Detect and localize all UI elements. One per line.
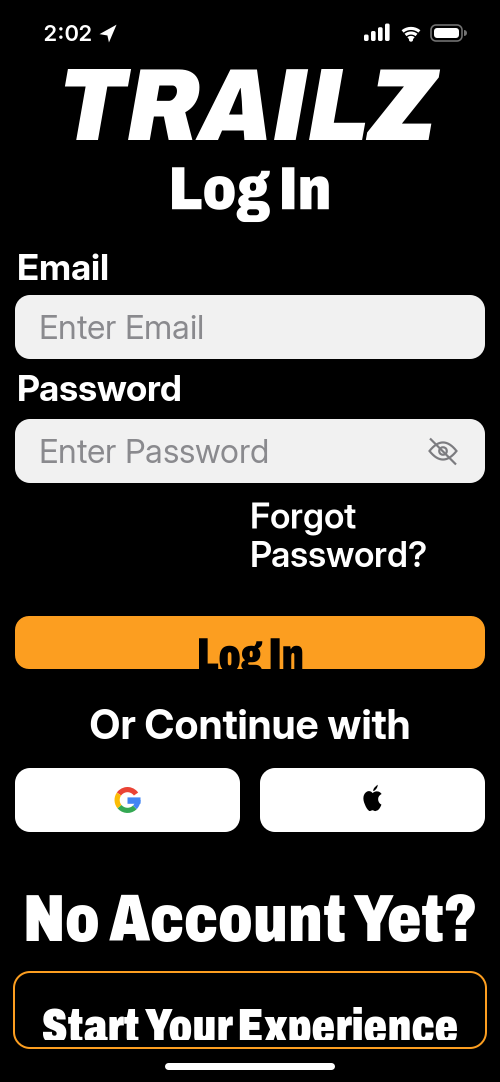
button[interactable]: Forgot	[250, 495, 500, 575]
staticText: No Account Yet?	[23, 883, 477, 955]
button[interactable]: Email, text field	[15, 295, 485, 359]
staticText: Or Continue with	[89, 699, 410, 749]
staticText: Log In	[196, 629, 303, 681]
staticText: Start Your Experience	[41, 999, 458, 1053]
staticText: 2:02	[43, 20, 92, 46]
button[interactable]: Log In	[15, 616, 485, 669]
button[interactable]: Show password	[429, 438, 457, 463]
button[interactable]: Start Your Experience	[14, 972, 486, 1048]
staticText: Enter Password	[39, 431, 269, 471]
button[interactable]: Password, secure text field	[15, 419, 485, 483]
staticText: Enter Email	[39, 307, 204, 347]
staticText: Forgot	[250, 495, 356, 537]
staticText: Password	[17, 366, 182, 410]
button[interactable]: Continue with Apple	[260, 768, 485, 832]
staticText: TRAILZ	[58, 50, 436, 162]
staticText: Email	[17, 245, 109, 289]
button[interactable]: Continue with Google	[15, 768, 240, 832]
staticText: Log In	[168, 156, 331, 222]
staticText: Password?	[250, 533, 427, 575]
